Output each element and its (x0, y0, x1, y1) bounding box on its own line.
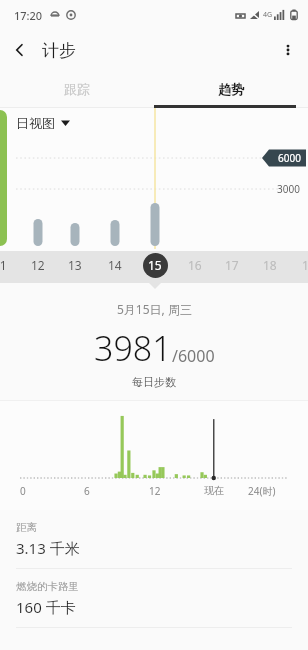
staticText: 跟踪 (64, 81, 90, 97)
button[interactable]: 16 (181, 251, 209, 279)
staticText: 距离 (16, 521, 37, 534)
button[interactable]: 1 (291, 251, 308, 279)
staticText: 3.13 千米 (16, 538, 80, 558)
staticText: /6000 (172, 345, 215, 367)
button[interactable]: 趋势 (154, 70, 308, 108)
button[interactable]: 18 (256, 251, 284, 279)
staticText: 13 (68, 257, 82, 273)
staticText: 日视图 (16, 115, 55, 131)
staticText: 3000 (277, 182, 300, 196)
staticText: 5月15日, 周三 (117, 301, 192, 317)
staticText: 24(时) (248, 484, 276, 498)
staticText: 0 (20, 484, 26, 498)
button[interactable]: 14 (101, 251, 129, 279)
staticText: 12 (149, 484, 161, 498)
staticText: 3981 (94, 325, 172, 371)
button[interactable]: 返回 (0, 30, 40, 70)
button[interactable]: 距离 (0, 510, 308, 568)
button[interactable]: 13 (61, 251, 89, 279)
staticText: 12 (31, 257, 45, 273)
staticText: 160 千卡 (16, 597, 76, 617)
staticText: 6 (84, 484, 90, 498)
staticText: 4G (263, 10, 273, 20)
staticText: 17 (225, 257, 239, 273)
staticText: 6000 (278, 151, 301, 165)
staticText: 趋势 (218, 81, 244, 97)
button[interactable]: 12 (24, 251, 52, 279)
button[interactable]: 跟踪 (0, 70, 154, 108)
staticText: 15 (148, 257, 162, 273)
button[interactable]: 17 (218, 251, 246, 279)
staticText: 18 (263, 257, 277, 273)
button[interactable]: 更多选项 (268, 30, 308, 70)
staticText: 16 (188, 257, 202, 273)
staticText: 11 (0, 257, 7, 273)
button[interactable]: 燃烧的卡路里 (0, 569, 308, 627)
staticText: 17:20 (14, 8, 43, 23)
staticText: 计步 (42, 40, 76, 61)
staticText: 1 (302, 257, 308, 273)
staticText: 现在 (204, 484, 224, 497)
button[interactable]: 15 (141, 251, 169, 279)
staticText: 燃烧的卡路里 (16, 580, 79, 593)
staticText: 14 (108, 257, 122, 273)
button[interactable]: 日视图 (16, 115, 70, 131)
staticText: 每日步数 (132, 375, 176, 389)
button[interactable]: 11 (0, 251, 14, 279)
